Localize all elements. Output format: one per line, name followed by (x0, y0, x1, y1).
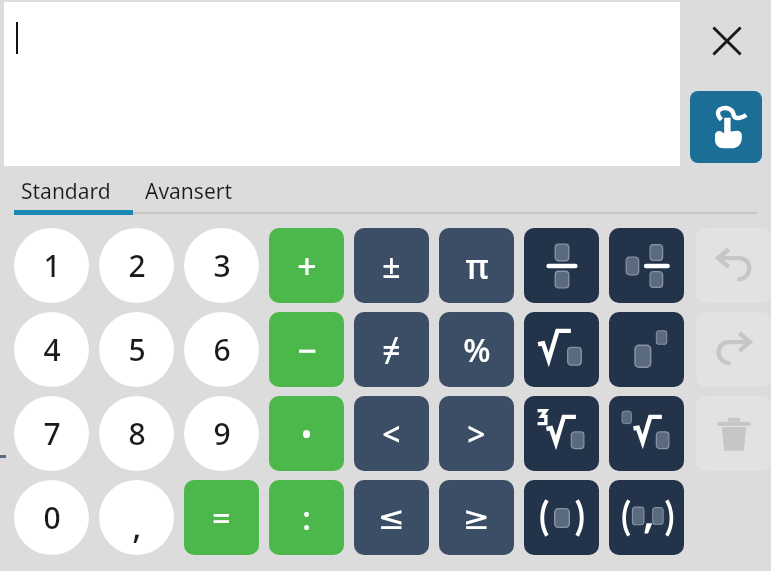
staticText: > (467, 412, 486, 456)
button[interactable]: 0 (14, 480, 89, 555)
button[interactable]: Kvadratrot (524, 312, 599, 387)
button[interactable]: ± (354, 228, 429, 303)
staticText: , (132, 503, 142, 549)
staticText: 3 (213, 245, 231, 286)
button[interactable]: Brøk (524, 228, 599, 303)
button[interactable]: > (439, 396, 514, 471)
staticText: 4 (43, 329, 61, 370)
button[interactable] (4, 2, 680, 166)
button[interactable]: − (269, 312, 344, 387)
button[interactable]: N-te rot (609, 396, 684, 471)
button[interactable]: ≥ (439, 480, 514, 555)
staticText: 1 (43, 245, 61, 286)
staticText: 9 (213, 413, 231, 454)
staticText: 2 (128, 245, 146, 286)
staticText: 5 (128, 329, 146, 370)
button[interactable]: Avansert (134, 170, 244, 212)
button[interactable]: Lukk (694, 8, 760, 74)
staticText: 6 (213, 329, 231, 370)
button[interactable]: Koordinat (609, 480, 684, 555)
button[interactable]: = (184, 480, 259, 555)
button[interactable]: Potens (609, 312, 684, 387)
staticText: • (301, 415, 312, 453)
button[interactable]: Kubikkrot (524, 396, 599, 471)
staticText: % (463, 328, 491, 372)
button[interactable]: < (354, 396, 429, 471)
button[interactable]: • (269, 396, 344, 471)
staticText: ≥ (463, 499, 490, 536)
button[interactable]: 6 (184, 312, 259, 387)
button[interactable]: : (269, 480, 344, 555)
button[interactable]: ≠ (354, 312, 429, 387)
button[interactable]: Slett (696, 396, 771, 471)
staticText: − (297, 327, 317, 373)
button[interactable]: 9 (184, 396, 259, 471)
staticText: : (302, 496, 311, 540)
staticText: < (382, 412, 401, 456)
button[interactable]: 4 (14, 312, 89, 387)
staticText: + (297, 243, 317, 289)
staticText: 8 (128, 413, 146, 454)
button[interactable]: 1 (14, 228, 89, 303)
button[interactable]: 3 (184, 228, 259, 303)
button[interactable]: 7 (14, 396, 89, 471)
button[interactable]: Blandet tall (609, 228, 684, 303)
staticText: π (465, 243, 489, 289)
button[interactable]: π (439, 228, 514, 303)
staticText: Avansert (145, 177, 233, 206)
button[interactable]: ≤ (354, 480, 429, 555)
staticText: = (212, 496, 231, 540)
button[interactable]: Gjør om (696, 312, 771, 387)
button[interactable]: Parentes (524, 480, 599, 555)
button[interactable]: Angre (696, 228, 771, 303)
button[interactable]: 2 (99, 228, 174, 303)
button[interactable]: 8 (99, 396, 174, 471)
staticText: 7 (43, 413, 61, 454)
staticText: ≤ (378, 499, 405, 536)
button[interactable]: + (269, 228, 344, 303)
button[interactable]: % (439, 312, 514, 387)
staticText: 0 (43, 497, 61, 538)
staticText: ≠ (382, 328, 401, 372)
button[interactable]: Håndskrift (690, 91, 762, 163)
staticText: Standard (21, 177, 111, 206)
staticText: ± (382, 244, 401, 288)
button[interactable]: , (99, 480, 174, 555)
button[interactable]: 5 (99, 312, 174, 387)
button[interactable]: Standard (8, 170, 124, 212)
